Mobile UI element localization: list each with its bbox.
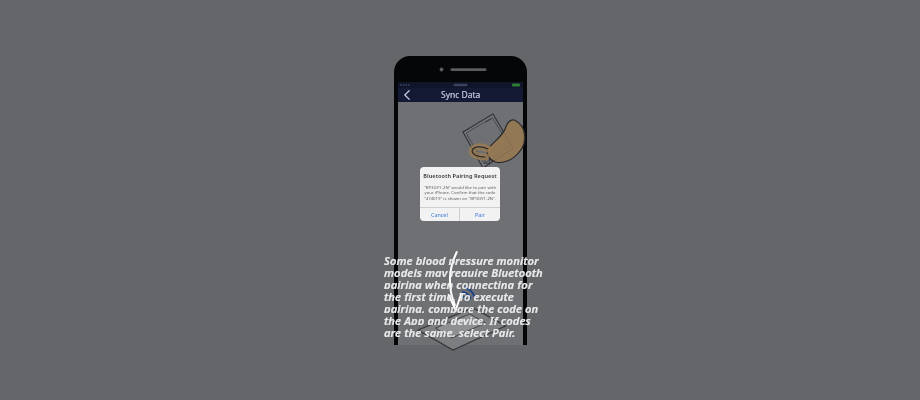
staticText: Pair <box>475 211 485 218</box>
button[interactable]: Cancel <box>420 208 459 221</box>
staticText: Cancel <box>431 211 448 218</box>
staticText: the App and device. If codes <box>384 313 531 325</box>
staticText: the first time. To execute <box>384 289 514 301</box>
staticText: pairing when connecting for <box>384 277 533 289</box>
staticText: are the same, select Pair. <box>384 325 516 337</box>
staticText: pairing, compare the code on <box>384 301 539 313</box>
button[interactable]: Back <box>401 89 413 101</box>
staticText: models may require Bluetooth <box>384 265 543 277</box>
staticText: Some blood pressure monitor <box>384 253 539 265</box>
staticText: Sync Data <box>441 89 481 101</box>
staticText: "BP3GY1-2N" would like to pair with your… <box>423 184 497 202</box>
button[interactable]: Pair <box>460 208 500 221</box>
button[interactable]: Sync Data <box>398 88 523 102</box>
staticText: Bluetooth Pairing Request <box>420 172 500 180</box>
